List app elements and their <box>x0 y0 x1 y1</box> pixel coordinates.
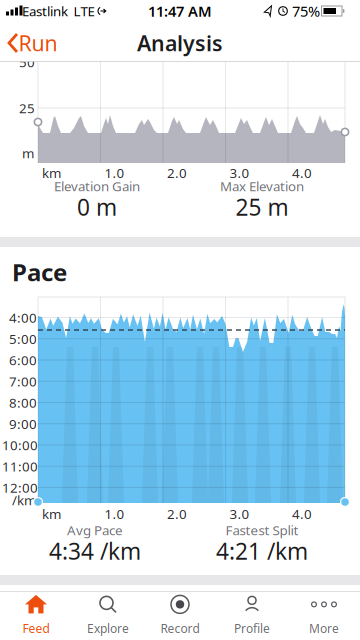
staticText: 12:00 <box>2 479 38 496</box>
staticText: 7:00 <box>9 372 37 390</box>
staticText: m <box>22 144 34 162</box>
staticText: 1.0 <box>104 164 124 182</box>
staticText: 25 <box>19 99 35 117</box>
staticText: 10:00 <box>2 436 38 454</box>
staticText: 4:34 /km <box>49 536 141 566</box>
staticText: 4.0 <box>292 164 312 182</box>
staticText: Pace <box>12 256 67 288</box>
staticText: 9:00 <box>9 415 37 433</box>
button[interactable]: Explore <box>72 592 144 640</box>
staticText: Explore <box>87 620 129 636</box>
staticText: Record <box>160 620 199 636</box>
staticText: Avg Pace <box>67 521 123 539</box>
button[interactable]: Feed <box>0 592 72 640</box>
staticText: 1.0 <box>104 505 124 523</box>
staticText: Fastest Split <box>225 521 298 539</box>
staticText: 2.0 <box>167 164 187 182</box>
staticText: Max Elevation <box>220 177 304 195</box>
staticText: 4:00 <box>9 309 37 326</box>
staticText: 2.0 <box>167 505 187 523</box>
button[interactable]: Back <box>0 24 62 62</box>
staticText: km <box>42 164 61 182</box>
staticText: 5:00 <box>9 330 37 348</box>
staticText: Profile <box>234 620 270 636</box>
button[interactable]: Record <box>144 592 216 640</box>
staticText: 11:47 AM <box>148 1 212 21</box>
staticText: 4:21 /km <box>216 536 308 566</box>
staticText: Feed <box>22 620 49 636</box>
button[interactable]: More <box>288 592 360 640</box>
staticText: 11:00 <box>2 457 38 475</box>
staticText: 6:00 <box>9 351 37 369</box>
staticText: LTE <box>73 2 94 20</box>
staticText: 75% <box>292 1 320 21</box>
staticText: Run <box>18 29 57 57</box>
staticText: Elevation Gain <box>54 177 140 195</box>
staticText: 50 <box>19 53 35 71</box>
staticText: km <box>42 505 61 523</box>
staticText: Analysis <box>137 29 223 57</box>
staticText: 4.0 <box>292 505 312 523</box>
staticText: 3.0 <box>229 164 249 182</box>
staticText: 3.0 <box>229 505 249 523</box>
staticText: /km <box>12 491 36 509</box>
staticText: 0 m <box>77 192 117 222</box>
button[interactable]: Profile <box>216 592 288 640</box>
staticText: 8:00 <box>9 394 37 411</box>
staticText: 25 m <box>235 192 288 222</box>
staticText: More <box>309 620 339 636</box>
staticText: Eastlink <box>22 2 68 20</box>
